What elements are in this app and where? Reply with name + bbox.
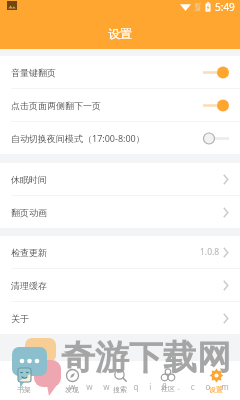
staticText: 关于 [11,313,29,324]
staticText: 清理缓存 [11,280,47,291]
staticText: 音量键翻页 [11,67,56,78]
button[interactable]: 社区 [144,361,192,400]
staticText: w w w . q i 8 . c o m [69,381,234,392]
button[interactable]: 休眠时间 [0,163,240,195]
staticText: 翻页动画 [11,207,47,218]
staticText: 5:49 [215,0,235,14]
button[interactable]: 清理缓存 [0,269,240,301]
staticText: 书架 [17,385,31,394]
button[interactable]: 点击页面两侧翻下一页 [0,89,240,121]
button[interactable]: 自动切换夜间模式（17:00-8:00） [0,122,240,154]
button[interactable]: 检查更新 [0,236,240,268]
staticText: 自动切换夜间模式（17:00-8:00） [11,132,145,144]
button[interactable]: 发现 [48,361,96,400]
staticText: 检查更新 [11,247,47,258]
staticText: 1.0.8 [200,246,220,258]
button[interactable]: 设置 [192,361,240,400]
button[interactable]: 搜索 [96,361,144,400]
staticText: 搜索 [113,385,127,394]
button[interactable]: 音量键翻页 [0,56,240,88]
staticText: 设置 [209,385,223,394]
staticText: 社区 [161,384,175,393]
button[interactable]: 书架 [0,361,48,400]
staticText: 设置 [108,26,132,41]
button[interactable]: 关于 [0,302,240,334]
button[interactable]: 翻页动画 [0,196,240,228]
staticText: 点击页面两侧翻下一页 [11,100,101,111]
staticText: 奇游下载网 [61,336,231,379]
staticText: 发现 [65,385,79,394]
staticText: 休眠时间 [11,174,47,185]
